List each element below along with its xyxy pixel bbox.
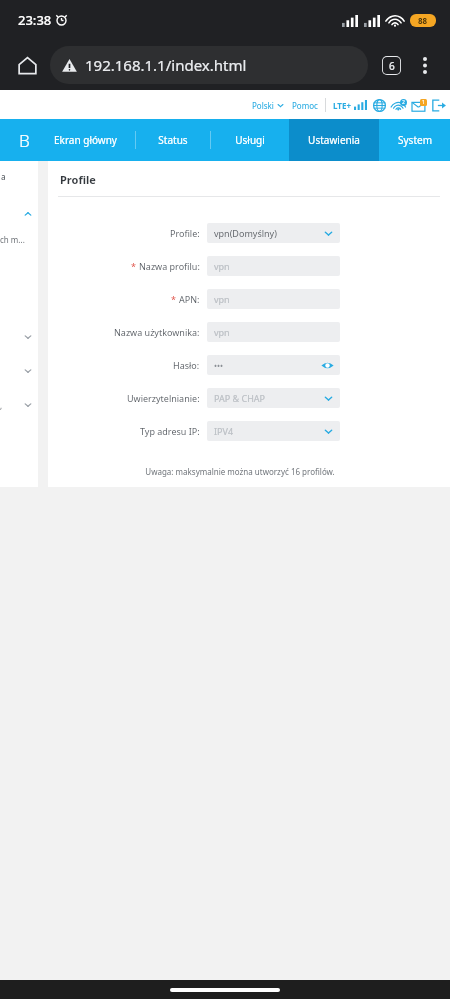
staticText: Nazwa użytkownika: — [114, 326, 200, 338]
staticText: 6 — [389, 59, 395, 73]
staticText: APN: — [179, 293, 200, 305]
staticText: Usługi — [235, 133, 265, 147]
staticText: B — [19, 129, 30, 152]
staticText: Nazwa profilu: — [139, 260, 200, 272]
staticText: System — [398, 133, 432, 147]
button[interactable]: Pomoc — [292, 100, 318, 111]
button[interactable]: More options — [410, 50, 440, 80]
button[interactable]: Status — [136, 119, 210, 161]
staticText: Ustawienia — [308, 133, 360, 147]
staticText: Profile — [60, 172, 96, 187]
staticText: , — [0, 400, 3, 411]
staticText: ch m... — [0, 234, 25, 245]
staticText: Ekran główny — [54, 133, 117, 147]
staticText: Profile: — [170, 227, 200, 239]
button[interactable]: 192.168.1.1/index.html — [50, 46, 368, 84]
button[interactable] — [0, 329, 38, 345]
staticText: 192.168.1.1/index.html — [85, 55, 247, 75]
button[interactable]: vpn — [207, 322, 340, 342]
staticText: Uwaga: maksymalnie można utworzyć 16 pro… — [48, 466, 432, 477]
staticText: vpn — [214, 326, 230, 338]
staticText: Hasło: — [173, 359, 200, 371]
button[interactable]: ••• — [207, 355, 340, 375]
button[interactable]: Show password — [321, 359, 334, 372]
button[interactable] — [0, 206, 38, 222]
button[interactable]: Usługi — [211, 119, 289, 161]
button[interactable]: Ustawienia — [289, 119, 379, 161]
button[interactable]: vpn — [207, 289, 340, 309]
button[interactable]: Tabs: 6 open — [376, 50, 406, 80]
staticText: 88 — [418, 15, 428, 26]
staticText: a — [1, 171, 6, 182]
staticText: 23:38 — [18, 11, 52, 29]
button[interactable]: vpn — [207, 256, 340, 276]
staticText: 1 — [422, 99, 425, 106]
staticText: * — [171, 293, 179, 305]
button[interactable]: Home — [10, 48, 44, 82]
staticText: * — [131, 260, 139, 272]
button[interactable]: vpn(Domyślny) — [207, 223, 340, 243]
button[interactable]: PAP & CHAP — [207, 388, 340, 408]
button[interactable]: , — [0, 397, 38, 413]
staticText: Polski — [252, 100, 274, 111]
staticText: vpn — [214, 260, 230, 272]
staticText: vpn(Domyślny) — [214, 227, 277, 239]
button[interactable] — [0, 363, 38, 379]
staticText: PAP & CHAP — [214, 392, 266, 404]
staticText: Uwierzytelnianie: — [127, 392, 200, 404]
staticText: Typ adresu IP: — [140, 425, 200, 437]
staticText: IPV4 — [214, 425, 234, 437]
staticText: Status — [158, 133, 188, 147]
button[interactable]: System — [379, 119, 450, 161]
staticText: vpn — [214, 293, 230, 305]
staticText: LTE+ — [333, 100, 351, 111]
button[interactable]: Ekran główny — [36, 119, 135, 161]
button[interactable]: Log out — [432, 99, 446, 112]
staticText: ••• — [214, 360, 224, 371]
button[interactable]: IPV4 — [207, 421, 340, 441]
button[interactable]: Polski — [252, 100, 284, 111]
staticText: 2 — [402, 99, 405, 106]
